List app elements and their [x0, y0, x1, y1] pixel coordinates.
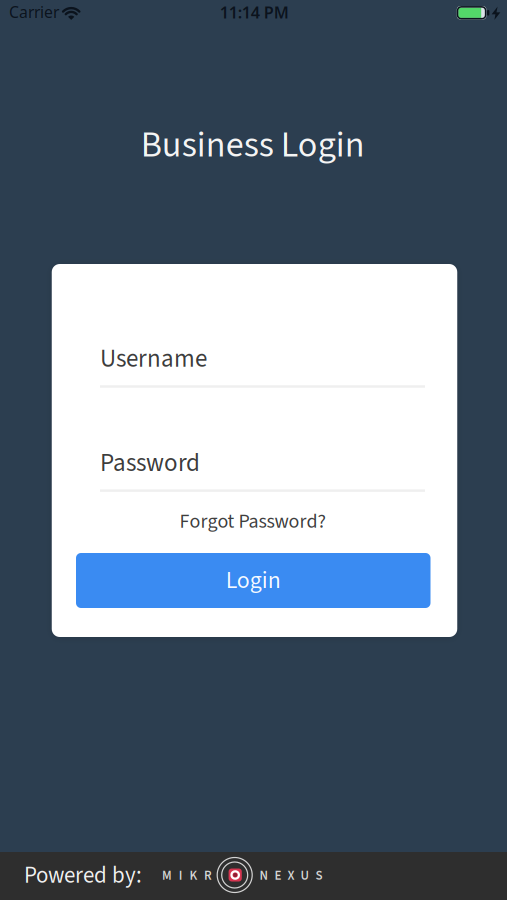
staticText: N [259, 866, 268, 885]
staticText: S [315, 866, 322, 885]
button[interactable]: Forgot Password? [179, 507, 326, 536]
staticText: Powered by: [24, 859, 142, 892]
staticText: Forgot Password? [179, 507, 326, 536]
staticText: K [189, 866, 197, 885]
staticText: Business Login [141, 120, 365, 171]
staticText: M [162, 866, 172, 885]
button[interactable]: Username [100, 341, 425, 388]
staticText: U [300, 866, 309, 885]
staticText: Carrier [9, 1, 59, 23]
staticText: X [287, 866, 294, 885]
staticText: Login [226, 563, 281, 597]
staticText: 11:14 PM [220, 1, 289, 23]
staticText: E [274, 866, 281, 885]
staticText: Password [100, 445, 200, 481]
button[interactable]: Password [100, 445, 425, 492]
staticText: R [204, 866, 212, 885]
staticText: I [179, 866, 183, 885]
staticText: Username [100, 341, 207, 377]
button[interactable]: Login [76, 553, 430, 608]
